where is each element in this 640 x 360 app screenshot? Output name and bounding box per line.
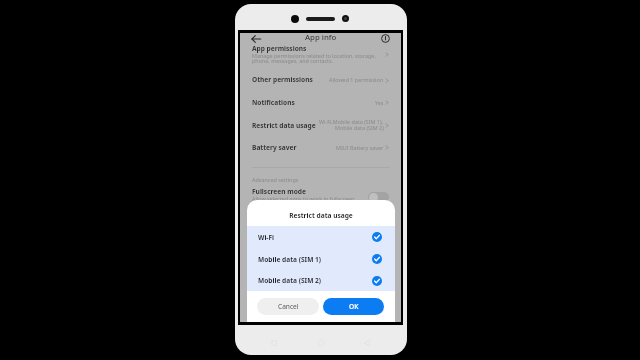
staticText: Advanced settings [252,176,299,183]
button[interactable]: Cancel [257,298,319,315]
staticText: Allowed 1 permission [329,76,384,83]
button[interactable]: Restrict data usage [252,121,316,130]
staticText: OK [349,302,359,311]
button[interactable]: OK [323,298,384,315]
staticText: Wi-Fi [258,233,275,242]
staticText: Cancel [278,302,299,311]
button[interactable]: Notifications [252,98,295,107]
staticText: phone, messages, and contacts. [252,57,333,64]
button[interactable]: App permissions [252,44,307,53]
button[interactable]: Mobile data (SIM 2) [247,270,395,291]
staticText: Yes [375,99,384,106]
staticText: Restrict data usage [247,211,395,220]
button[interactable]: Mobile data (SIM 1) [247,248,395,270]
staticText: App info [305,32,337,43]
staticText: Mobile data (SIM 2) [258,276,322,285]
button[interactable]: App details [381,34,390,43]
staticText: Wi-Fi,Mobile data (SIM 1), [319,118,384,125]
button[interactable]: Wi-Fi [247,226,395,248]
button[interactable]: Back [251,34,261,44]
staticText: Mobile data (SIM 2) [335,124,384,131]
button[interactable]: Battery saver [252,143,297,152]
staticText: MIUI Battery saver [336,144,384,151]
button[interactable]: Fullscreen mode toggle [368,192,389,202]
staticText: Allow selected apps to work in fullscree… [252,195,355,202]
button[interactable]: Other permissions [252,75,313,84]
button[interactable]: Fullscreen mode [252,187,306,196]
staticText: Manage permissions related to location, … [252,52,376,59]
staticText: Mobile data (SIM 1) [258,255,322,264]
